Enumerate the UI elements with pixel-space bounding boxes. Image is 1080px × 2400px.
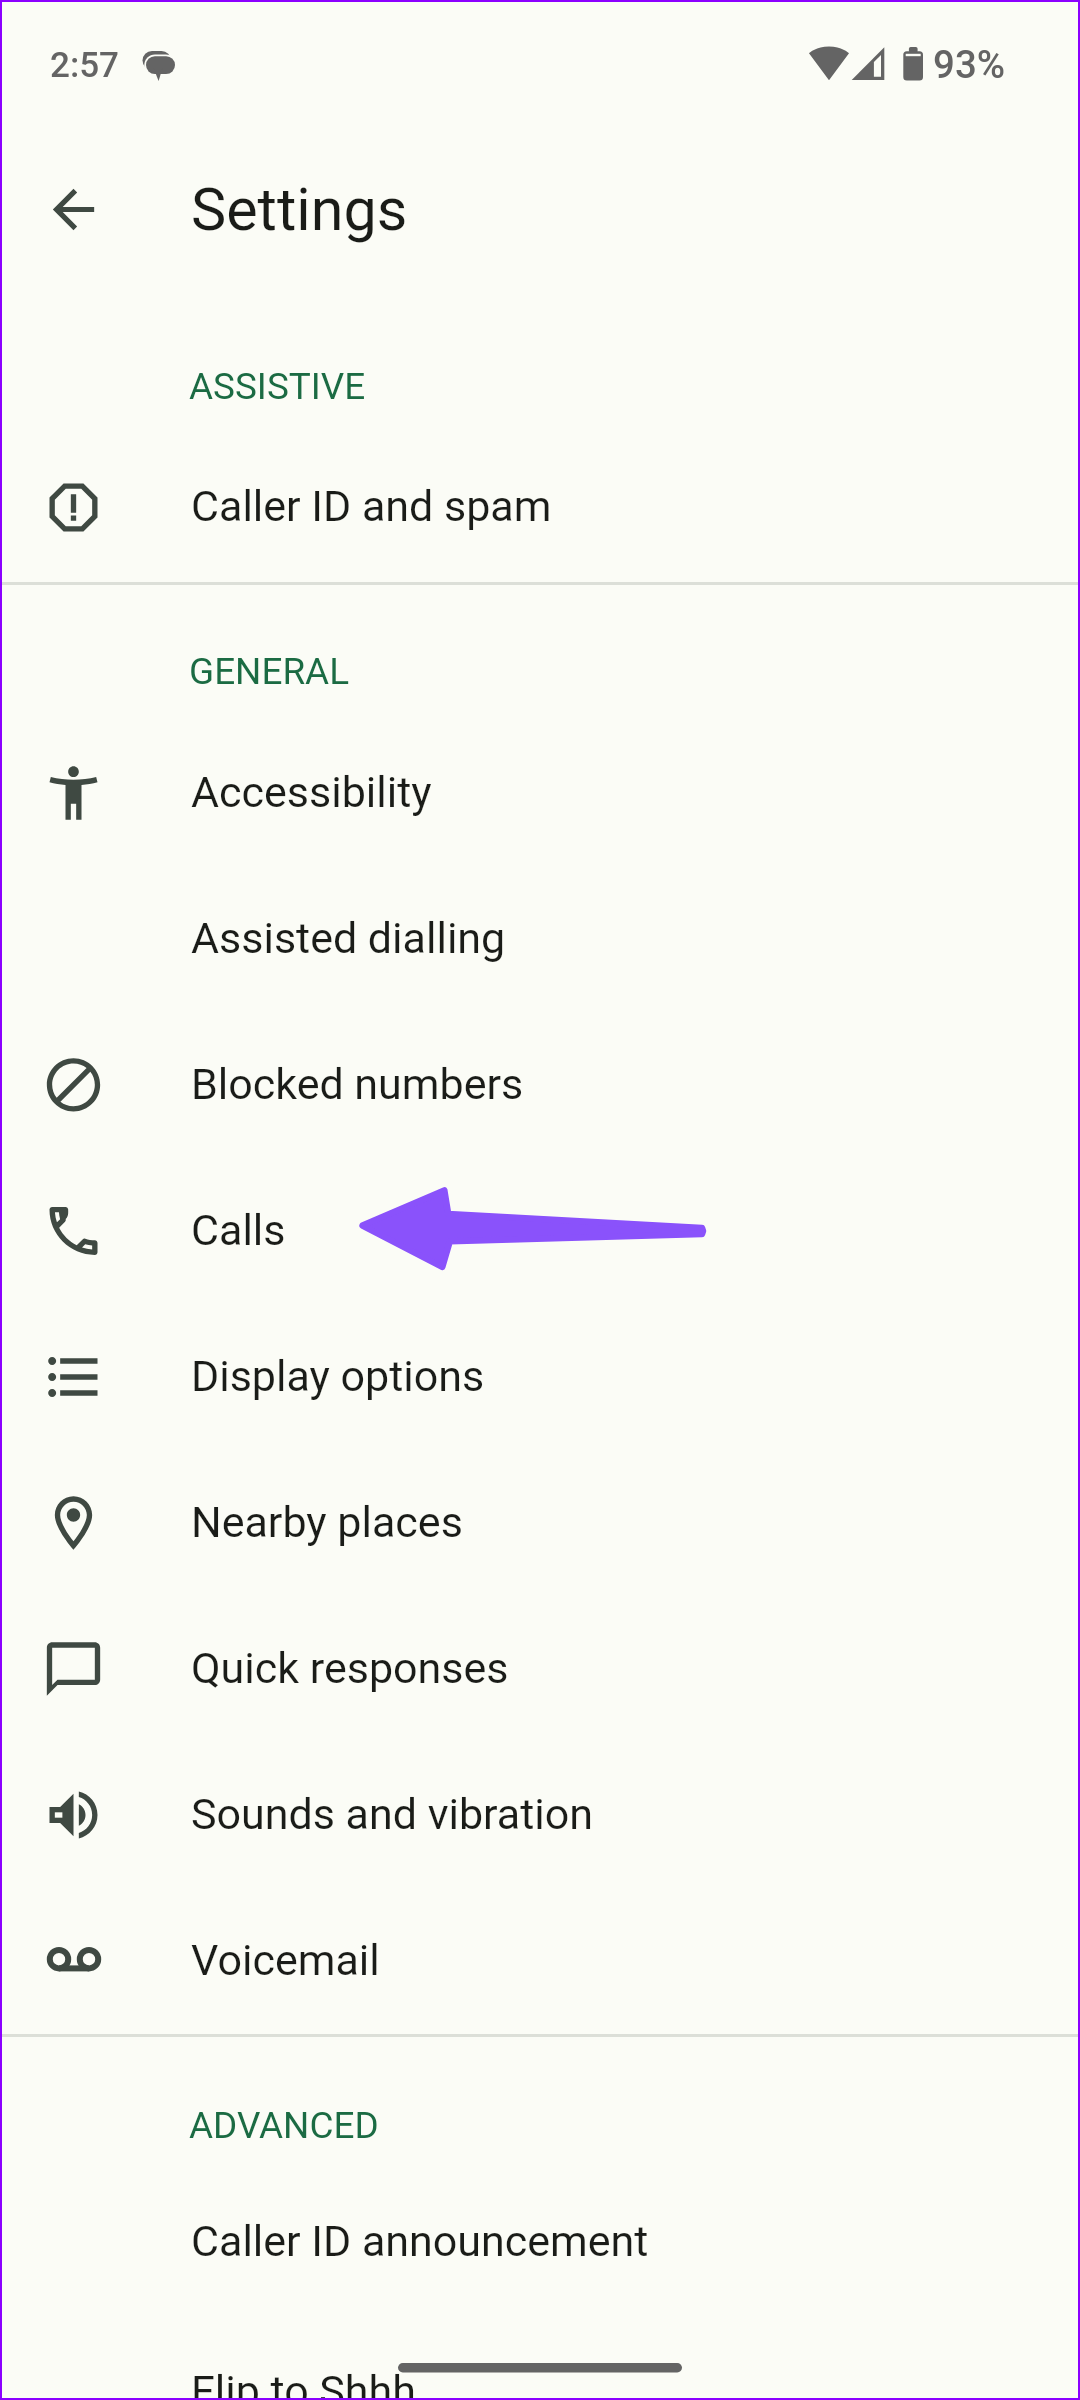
staticText: Settings bbox=[191, 175, 408, 244]
staticText: Nearby places bbox=[191, 1497, 463, 1547]
staticText: 2:57 bbox=[50, 45, 119, 86]
staticText: Quick responses bbox=[191, 1643, 509, 1693]
staticText: Blocked numbers bbox=[191, 1059, 524, 1109]
button[interactable]: Nearby places bbox=[0, 1449, 1080, 1595]
button[interactable]: Display options bbox=[0, 1303, 1080, 1449]
button[interactable]: Accessibility bbox=[0, 719, 1080, 865]
button[interactable]: Assisted dialling bbox=[0, 865, 1080, 1011]
staticText: Calls bbox=[191, 1205, 286, 1255]
staticText: GENERAL bbox=[189, 650, 1080, 693]
button[interactable]: Voicemail bbox=[0, 1887, 1080, 2033]
button[interactable]: Calls bbox=[0, 1157, 1080, 1303]
staticText: ADVANCED bbox=[189, 2104, 1080, 2147]
button[interactable]: Sounds and vibration bbox=[0, 1741, 1080, 1887]
staticText: Caller ID and spam bbox=[191, 481, 552, 531]
button[interactable]: Blocked numbers bbox=[0, 1011, 1080, 1157]
staticText: Assisted dialling bbox=[191, 913, 506, 963]
staticText: Flip to Shhh bbox=[191, 2366, 416, 2400]
button[interactable]: Navigate up bbox=[21, 157, 126, 262]
staticText: Voicemail bbox=[191, 1935, 380, 1985]
staticText: 93% bbox=[933, 42, 1006, 87]
staticText: Accessibility bbox=[191, 767, 432, 817]
staticText: Caller ID announcement bbox=[191, 2216, 649, 2266]
staticText: Display options bbox=[191, 1351, 485, 1401]
staticText: Sounds and vibration bbox=[191, 1789, 594, 1839]
button[interactable]: Flip to Shhh bbox=[0, 2318, 1080, 2400]
staticText: ASSISTIVE bbox=[189, 365, 1080, 408]
button[interactable]: Caller ID and spam bbox=[0, 433, 1080, 579]
button[interactable]: Caller ID announcement bbox=[0, 2168, 1080, 2314]
button[interactable]: Quick responses bbox=[0, 1595, 1080, 1741]
